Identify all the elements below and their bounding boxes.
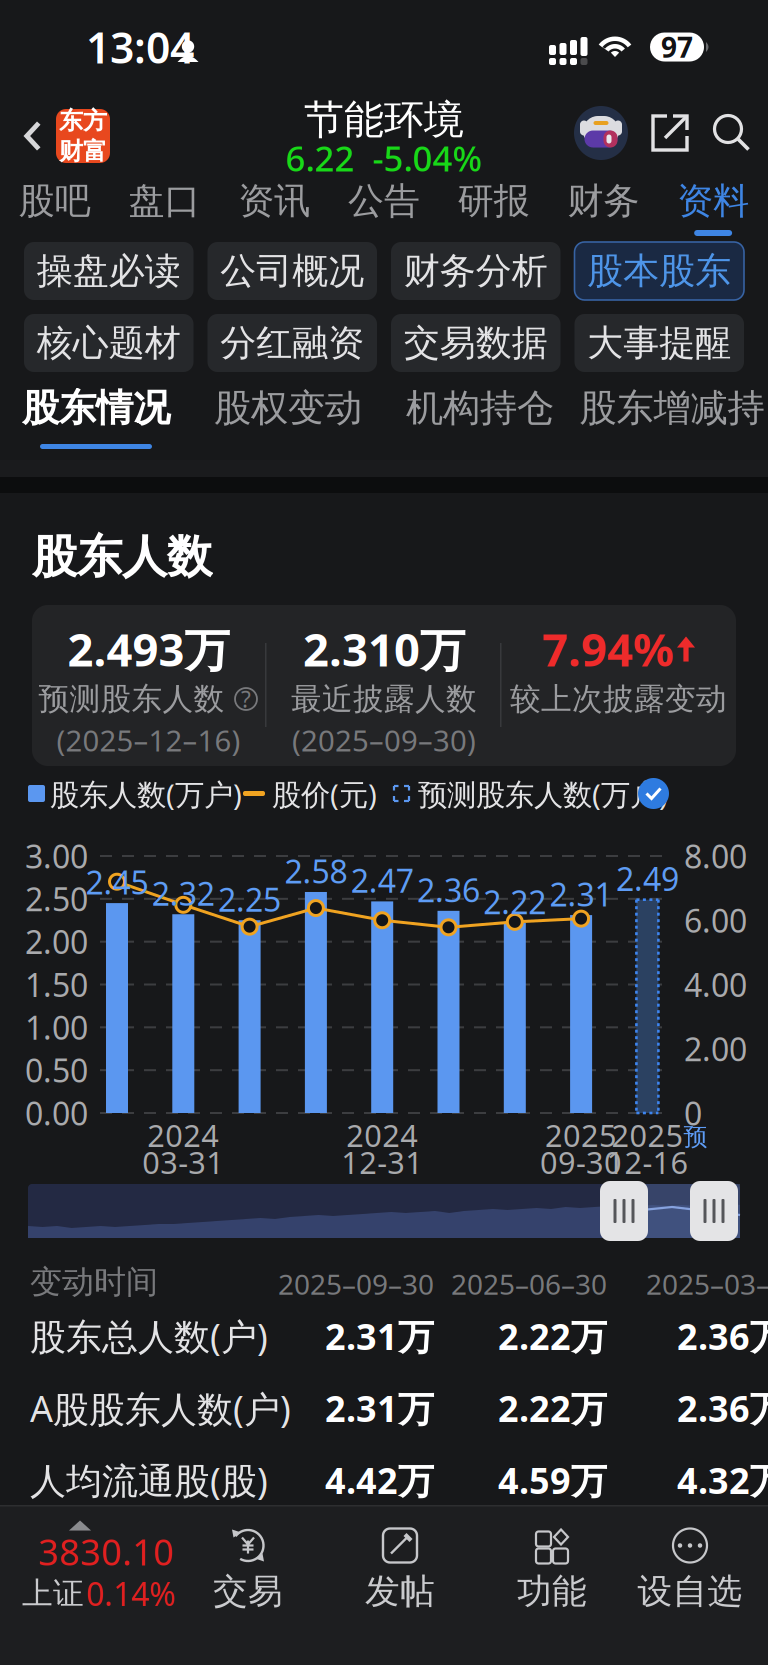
staticText: 操盘必读 [37, 249, 181, 293]
staticText: 股东人数(万户) [50, 774, 242, 813]
staticText: 设自选 [637, 1570, 742, 1613]
staticText: 2025 [545, 1115, 617, 1155]
staticText: 2024 [147, 1115, 219, 1155]
staticText: 大事提醒 [587, 321, 731, 365]
button[interactable]: 交易数据 [391, 314, 560, 372]
staticText: 上证 [22, 1575, 84, 1612]
button[interactable]: Range end [690, 1181, 738, 1241]
staticText: 2.31万 [325, 1312, 434, 1360]
staticText: 12-16 [606, 1142, 688, 1182]
button[interactable]: Share [650, 113, 690, 153]
staticText: 12-31 [341, 1142, 423, 1182]
staticText: 1.50 [25, 963, 88, 1006]
button[interactable]: 股本股东 [574, 242, 744, 300]
staticText: 2024 [346, 1115, 418, 1155]
staticText: 4.42万 [325, 1456, 434, 1504]
staticText: 2.36万 [677, 1312, 768, 1360]
button[interactable]: 3830.10 [0, 1506, 180, 1664]
button[interactable]: 资料 [658, 180, 768, 241]
staticText: -5.04% [372, 135, 482, 181]
button[interactable]: 股东增减持 [576, 373, 768, 460]
staticText: 2025 [611, 1115, 683, 1155]
staticText: 2.47 [351, 859, 414, 902]
staticText: ? [241, 684, 251, 714]
staticText: 2.22 [483, 881, 546, 923]
button[interactable]: 公告 [329, 180, 439, 241]
staticText: 3.00 [25, 835, 88, 877]
staticText: 2025–06–30 [451, 1265, 607, 1303]
staticText: 2.31万 [325, 1384, 434, 1432]
staticText: 03-31 [142, 1142, 224, 1182]
button[interactable]: 操盘必读 [24, 242, 193, 300]
staticText: 节能环境 [304, 95, 464, 144]
button[interactable]: 股吧 [0, 180, 110, 241]
button[interactable]: 公司概况 [207, 242, 377, 300]
staticText: 研报 [458, 179, 530, 223]
staticText: (2025–09–30) [292, 720, 476, 759]
button[interactable]: 盘口 [110, 180, 219, 241]
staticText: 2.25 [218, 878, 281, 920]
staticText: 功能 [517, 1570, 587, 1613]
button[interactable]: 发帖 [330, 1506, 470, 1664]
button[interactable]: 资讯 [219, 180, 329, 241]
staticText: 较上次披露变动 [510, 680, 727, 718]
staticText: 交易数据 [404, 321, 548, 365]
button[interactable]: 股东情况 [0, 373, 192, 460]
staticText: 2025–03–3 [646, 1265, 768, 1303]
staticText: 97 [661, 28, 693, 66]
staticText: 机构持仓 [406, 385, 554, 431]
button[interactable]: 研报 [439, 180, 549, 241]
staticText: 股本股东 [587, 249, 731, 293]
staticText: (2025–12–16) [56, 720, 240, 759]
staticText: 09-30 [540, 1142, 622, 1182]
button[interactable]: AI assistant [574, 106, 628, 160]
button[interactable]: 机构持仓 [384, 373, 576, 460]
staticText: 0.50 [25, 1049, 88, 1091]
staticText: 分红融资 [220, 321, 364, 365]
button[interactable]: 交易 [178, 1506, 318, 1664]
staticText: 6.22 [285, 135, 354, 181]
staticText: 股东总人数(户) [30, 1312, 268, 1360]
staticText: 财务 [567, 179, 639, 223]
staticText: 股东增减持 [579, 385, 764, 431]
button[interactable]: 分红融资 [207, 314, 377, 372]
staticText: 2.00 [684, 1027, 747, 1070]
staticText: 2.45 [85, 861, 148, 903]
staticText: 2025–09–30 [278, 1265, 434, 1303]
staticText: 0 [684, 1092, 702, 1134]
staticText: 预测股东人数(万户) [418, 774, 668, 813]
staticText: 股价(元) [272, 774, 377, 813]
staticText: 交易 [213, 1570, 283, 1613]
button[interactable]: Search [712, 113, 752, 153]
button[interactable]: 设自选 [620, 1506, 760, 1664]
button[interactable]: Toggle forecast series [638, 778, 669, 809]
staticText: 2.310万 [303, 619, 465, 679]
staticText: 资料 [677, 179, 749, 223]
staticText: 2.31 [550, 873, 613, 915]
button[interactable]: 股权变动 [192, 373, 384, 460]
staticText: 股东人数 [32, 529, 212, 585]
staticText: 最近披露人数 [291, 680, 477, 718]
staticText: 预 [683, 1122, 707, 1152]
staticText: 财富 [59, 136, 107, 166]
staticText: 核心题材 [37, 321, 181, 365]
button[interactable]: 财务分析 [391, 242, 560, 300]
staticText: 7.94% [542, 619, 674, 679]
button[interactable]: 功能 [482, 1506, 622, 1664]
staticText: 2.00 [25, 920, 88, 963]
staticText: 预测股东人数 [38, 680, 224, 718]
staticText: 4.59万 [498, 1456, 607, 1504]
staticText: 4.32万 [677, 1456, 768, 1504]
staticText: 股东情况 [22, 385, 170, 431]
staticText: 4.00 [684, 963, 747, 1006]
button[interactable]: Range start [600, 1181, 648, 1241]
staticText: 公司概况 [220, 249, 364, 293]
staticText: 2.49 [616, 857, 679, 900]
button[interactable]: Back [20, 105, 132, 167]
staticText: A股股东人数(户) [30, 1384, 291, 1432]
staticText: 变动时间 [30, 1262, 158, 1302]
staticText: 东方 [59, 106, 107, 135]
button[interactable]: 核心题材 [24, 314, 193, 372]
button[interactable]: 大事提醒 [574, 314, 744, 372]
button[interactable]: 财务 [549, 180, 658, 241]
